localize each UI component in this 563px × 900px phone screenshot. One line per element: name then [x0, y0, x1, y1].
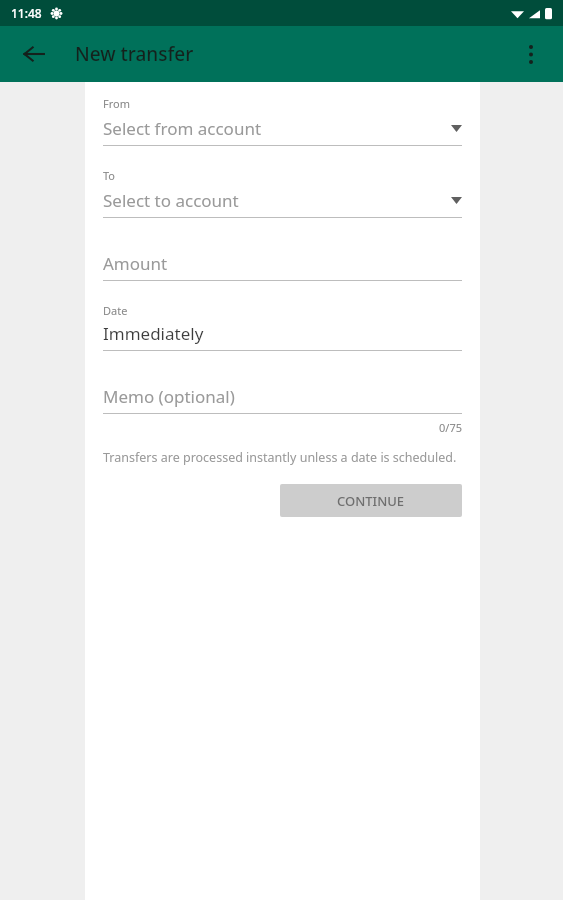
staticText: CONTINUE — [337, 492, 405, 510]
button[interactable]: Select to account — [103, 189, 462, 218]
staticText: Select from account — [103, 117, 451, 140]
staticText: 11:48 — [11, 5, 42, 21]
button[interactable]: Amount — [103, 252, 462, 281]
staticText: To — [103, 168, 116, 183]
staticText: Amount — [103, 252, 168, 275]
button[interactable]: Back — [10, 30, 58, 78]
staticText: Transfers are processed instantly unless… — [103, 449, 457, 466]
staticText: Select to account — [103, 189, 451, 212]
button[interactable]: CONTINUE — [280, 484, 462, 517]
staticText: Memo (optional) — [103, 385, 235, 408]
staticText: 0/75 — [439, 420, 462, 435]
button[interactable]: More options — [507, 30, 555, 78]
staticText: New transfer — [75, 41, 194, 67]
button[interactable]: Immediately — [103, 322, 462, 351]
button[interactable]: Memo (optional) — [103, 385, 462, 414]
staticText: Immediately — [103, 322, 204, 345]
button[interactable]: Select from account — [103, 117, 462, 146]
staticText: Date — [103, 303, 128, 318]
staticText: From — [103, 96, 130, 111]
